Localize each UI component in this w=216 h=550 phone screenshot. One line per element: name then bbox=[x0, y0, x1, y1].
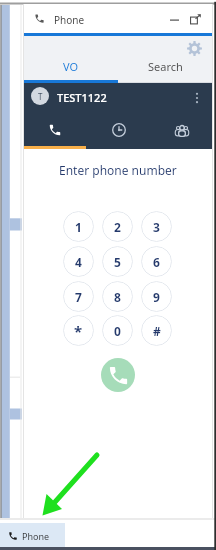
staticText: 6 bbox=[153, 254, 160, 270]
button[interactable]: * bbox=[63, 315, 94, 346]
button[interactable]: Settings bbox=[184, 38, 205, 59]
staticText: TEST1122 bbox=[57, 90, 107, 105]
staticText: 3 bbox=[153, 219, 160, 235]
button[interactable]: Phone bbox=[0, 523, 65, 549]
staticText: # bbox=[153, 323, 161, 339]
staticText: VO bbox=[63, 59, 79, 74]
button[interactable]: 0 bbox=[102, 315, 133, 346]
button[interactable]: 3 bbox=[141, 211, 172, 242]
staticText: * bbox=[74, 321, 83, 341]
button[interactable]: 4 bbox=[63, 246, 94, 277]
staticText: 4 bbox=[75, 254, 82, 270]
button[interactable]: 6 bbox=[141, 246, 172, 277]
staticText: Phone bbox=[22, 530, 50, 542]
button[interactable]: 5 bbox=[102, 246, 133, 277]
button[interactable]: Call bbox=[101, 358, 135, 392]
staticText: Search bbox=[148, 59, 183, 74]
staticText: 7 bbox=[75, 289, 82, 305]
button[interactable]: Search bbox=[118, 36, 213, 83]
button[interactable]: 2 bbox=[102, 211, 133, 242]
button[interactable]: More options bbox=[188, 89, 206, 107]
button[interactable]: 7 bbox=[63, 281, 94, 312]
staticText: Enter phone number bbox=[59, 162, 177, 178]
staticText: 0 bbox=[114, 323, 121, 339]
button[interactable]: T bbox=[23, 83, 213, 113]
staticText: 9 bbox=[153, 289, 160, 305]
staticText: T bbox=[38, 91, 43, 102]
button[interactable]: Recents bbox=[87, 113, 150, 146]
button[interactable]: Minimize bbox=[165, 11, 183, 29]
staticText: 8 bbox=[114, 289, 121, 305]
button[interactable]: 1 bbox=[63, 211, 94, 242]
button[interactable]: 8 bbox=[102, 281, 133, 312]
button[interactable]: 9 bbox=[141, 281, 172, 312]
staticText: 5 bbox=[114, 254, 121, 270]
button[interactable]: # bbox=[141, 315, 172, 346]
staticText: 1 bbox=[75, 219, 82, 235]
staticText: Phone bbox=[54, 13, 85, 27]
button[interactable]: Restore bbox=[186, 10, 204, 28]
button[interactable]: VO bbox=[23, 36, 118, 83]
staticText: 2 bbox=[114, 219, 121, 235]
button[interactable]: Contacts bbox=[150, 113, 213, 146]
button[interactable]: Dialpad bbox=[23, 113, 87, 146]
